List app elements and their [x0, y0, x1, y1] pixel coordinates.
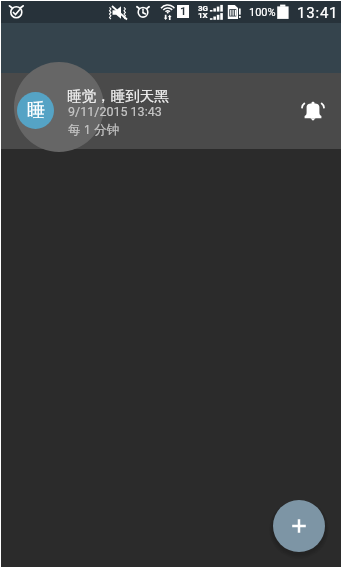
staticText: 100%: [249, 6, 276, 19]
button[interactable]: Toggle alarm: [296, 94, 330, 128]
button[interactable]: Add alarm: [273, 500, 325, 552]
staticText: 1X: [198, 11, 208, 20]
staticText: 13:41: [297, 4, 339, 22]
staticText: 1: [180, 5, 187, 18]
button[interactable]: 睡: [0, 73, 343, 149]
staticText: 每 1 分钟: [68, 121, 120, 138]
staticText: 9/11/2015 13:43: [68, 104, 162, 119]
staticText: 3G: [198, 4, 209, 13]
staticText: 睡: [27, 99, 45, 122]
staticText: 睡觉，睡到天黑: [67, 87, 169, 105]
